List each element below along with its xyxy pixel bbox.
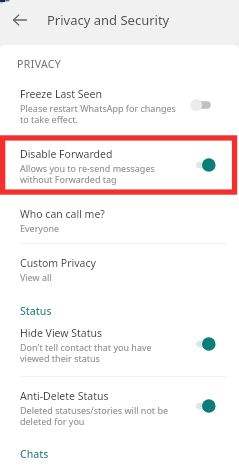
button[interactable]: Back [6, 6, 33, 33]
button[interactable]: Switch on [187, 333, 219, 355]
staticText: View all [20, 271, 52, 283]
staticText: Please restart WhatsApp for changes to t… [20, 102, 176, 125]
button[interactable] [0, 141, 239, 190]
staticText: Don't tell contact that you have viewed … [20, 341, 152, 364]
button[interactable]: Switch on [187, 154, 219, 176]
staticText: Status [20, 304, 52, 318]
staticText: Everyone [20, 222, 60, 234]
staticText: Disable Forwarded [20, 147, 113, 161]
staticText: Privacy and Security [47, 11, 170, 29]
staticText: Custom Privacy [20, 256, 96, 270]
button[interactable] [0, 80, 239, 125]
staticText: Deleted statuses/stories will not be del… [20, 404, 169, 427]
staticText: Chats [20, 447, 49, 461]
staticText: Hide View Status [20, 326, 103, 340]
button[interactable] [0, 382, 239, 430]
staticText: Freeze Last Seen [20, 87, 102, 101]
staticText: Anti-Delete Status [20, 389, 109, 403]
staticText: PRIVACY [17, 57, 62, 71]
staticText: Allows you to re-send messages without F… [20, 162, 155, 185]
button[interactable] [0, 320, 239, 370]
button[interactable] [0, 200, 239, 240]
staticText: Who can call me? [20, 207, 105, 221]
button[interactable] [0, 246, 239, 285]
button[interactable]: Switch on [187, 395, 219, 417]
button[interactable]: Switch off [187, 94, 219, 116]
